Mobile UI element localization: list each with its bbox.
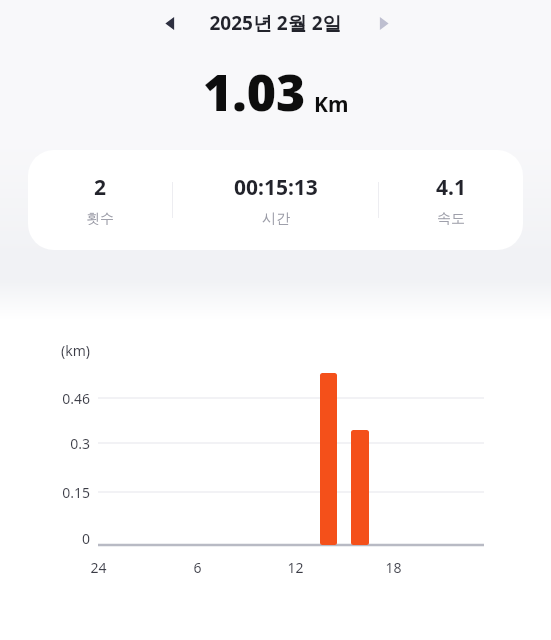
- button[interactable]: Next day: [370, 10, 396, 36]
- staticText: 0: [81, 529, 90, 548]
- staticText: 시간: [262, 210, 290, 228]
- staticText: 18: [385, 558, 402, 577]
- button[interactable]: Previous day: [157, 10, 183, 36]
- staticText: 4.1: [436, 173, 466, 202]
- staticText: 0.3: [70, 434, 90, 453]
- staticText: Km: [314, 90, 349, 119]
- staticText: (km): [61, 341, 90, 360]
- staticText: 속도: [437, 210, 465, 228]
- staticText: 2025년 2월 2일: [209, 10, 342, 36]
- staticText: 0.15: [62, 483, 90, 502]
- staticText: 24: [90, 558, 107, 577]
- staticText: 횟수: [86, 210, 114, 228]
- staticText: 00:15:13: [234, 173, 318, 202]
- staticText: 0.46: [62, 389, 90, 408]
- button[interactable]: 2: [28, 150, 523, 250]
- staticText: 1.03: [203, 58, 306, 126]
- staticText: 12: [287, 558, 304, 577]
- staticText: 6: [193, 558, 202, 577]
- staticText: 2: [94, 173, 107, 202]
